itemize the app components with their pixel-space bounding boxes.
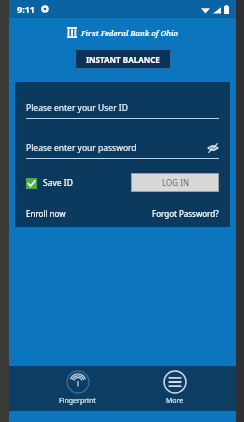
other: Fingerprint login (67, 371, 89, 393)
staticText: 9:11 (17, 3, 35, 15)
staticText: Please enter your password (26, 142, 137, 154)
staticText: More (166, 396, 184, 406)
other: More options (164, 371, 186, 393)
button[interactable]: Forgot Password? (152, 208, 219, 219)
button[interactable]: Enroll now (26, 208, 66, 219)
button[interactable]: LOG IN (131, 173, 219, 192)
button[interactable]: INSTANT BALANCE (75, 49, 171, 69)
staticText: Enroll now (26, 208, 66, 219)
staticText: First Federal Bank of Ohio (81, 28, 179, 38)
button[interactable]: More options (164, 371, 186, 406)
button[interactable]: Save ID (26, 177, 73, 189)
staticText: INSTANT BALANCE (86, 54, 160, 65)
staticText: Save ID (43, 177, 73, 189)
staticText: Please enter your User ID (26, 102, 128, 114)
button[interactable]: Show password (206, 141, 219, 154)
staticText: Forgot Password? (152, 208, 219, 219)
button[interactable]: Fingerprint login (59, 371, 96, 406)
staticText: LOG IN (162, 177, 189, 188)
staticText: Fingerprint (59, 396, 96, 406)
